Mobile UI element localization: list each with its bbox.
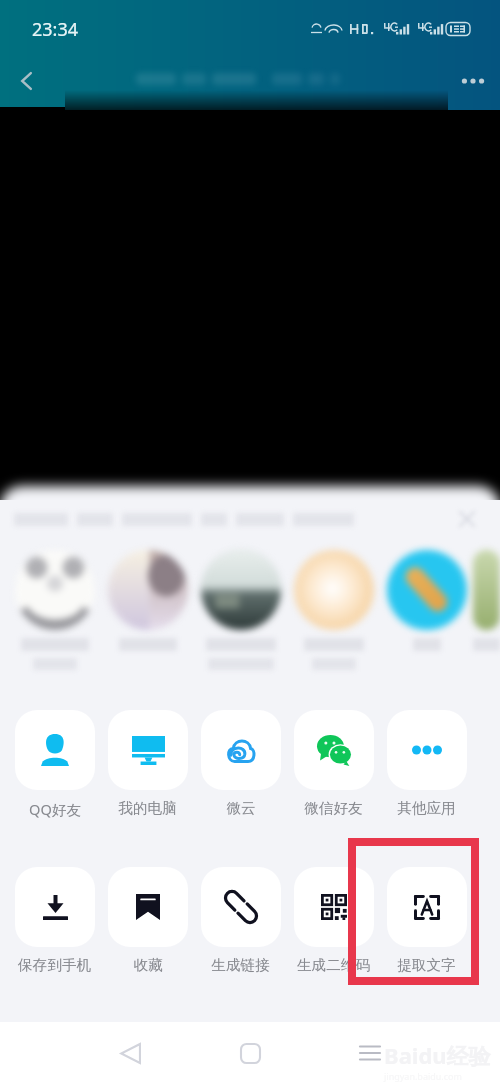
staticText: QQ好友 — [29, 799, 81, 819]
staticText: 生成二维码 — [297, 956, 370, 974]
staticText: 微信好友 — [304, 799, 363, 817]
staticText: 保存到手机 — [18, 956, 91, 974]
button[interactable]: 收藏 — [101, 867, 194, 974]
button[interactable]: Back — [108, 1022, 152, 1084]
button[interactable]: 我的电脑 — [101, 710, 194, 817]
staticText: 23:34 — [32, 17, 79, 42]
button[interactable]: QQ好友 — [8, 710, 101, 819]
button[interactable] — [473, 550, 500, 651]
button[interactable]: 其他应用 — [380, 710, 473, 817]
button[interactable]: 生成链接 — [194, 867, 287, 974]
button[interactable]: 微云 — [194, 710, 287, 817]
staticText: 其他应用 — [397, 799, 456, 817]
staticText: 微云 — [226, 799, 256, 817]
button[interactable]: Back — [0, 54, 54, 108]
button[interactable]: More options — [446, 54, 500, 108]
button[interactable]: 微信好友 — [287, 710, 380, 817]
button[interactable]: 生成二维码 — [287, 867, 380, 974]
staticText: 生成链接 — [211, 956, 270, 974]
button[interactable]: 保存到手机 — [8, 867, 101, 974]
button[interactable] — [101, 550, 194, 651]
staticText: 提取文字 — [397, 956, 456, 974]
staticText: 收藏 — [133, 956, 163, 974]
button[interactable] — [380, 550, 473, 651]
button[interactable]: 提取文字 — [380, 867, 473, 974]
button[interactable]: Home — [228, 1022, 272, 1084]
button[interactable] — [194, 550, 287, 670]
button[interactable]: Recents — [348, 1022, 392, 1084]
button[interactable]: Close — [454, 506, 480, 532]
staticText: Baidu经验 — [384, 1040, 491, 1070]
staticText: 我的电脑 — [118, 799, 177, 817]
button[interactable] — [287, 550, 380, 670]
button[interactable] — [8, 550, 101, 670]
